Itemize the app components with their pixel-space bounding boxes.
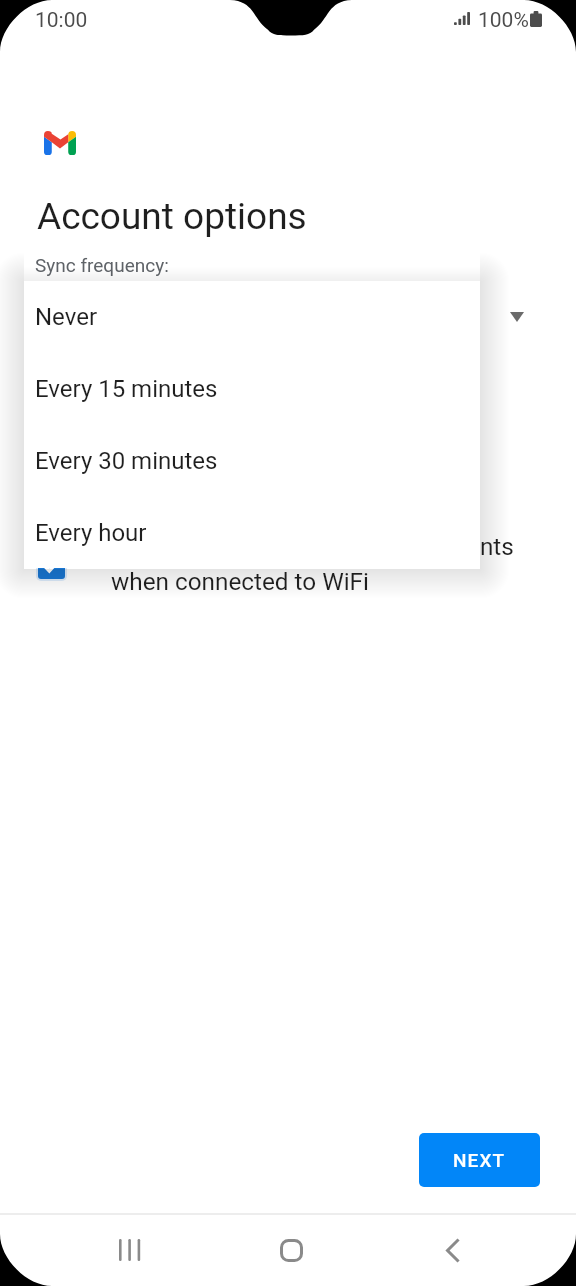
button[interactable]: Automatically download attachments — [38, 552, 65, 579]
button[interactable]: Recent apps — [82, 1214, 178, 1286]
staticText: Every 30 minutes — [35, 447, 218, 475]
button[interactable]: NEXT — [419, 1133, 540, 1187]
staticText: Never — [35, 303, 98, 331]
staticText: Every hour — [35, 519, 147, 547]
button[interactable]: Every hour — [24, 497, 480, 568]
staticText: 10:00 — [35, 8, 88, 33]
button[interactable]: Every 30 minutes — [24, 425, 480, 497]
staticText: NEXT — [453, 1149, 506, 1171]
staticText: Automatically download attachments — [111, 532, 514, 560]
staticText: when connected to WiFi — [111, 567, 369, 595]
button[interactable]: Never — [24, 281, 480, 353]
button[interactable]: Home — [243, 1214, 339, 1286]
button[interactable]: Back — [404, 1214, 500, 1286]
staticText: Sync frequency: — [35, 254, 169, 276]
staticText: Account options — [37, 195, 307, 238]
button[interactable]: Open sync frequency list — [495, 296, 539, 338]
button[interactable]: Every 15 minutes — [24, 353, 480, 425]
staticText: 100% — [478, 8, 529, 33]
staticText: Every 15 minutes — [35, 375, 218, 403]
